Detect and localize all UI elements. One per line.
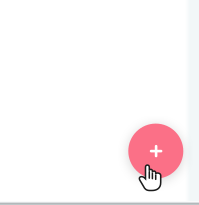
button[interactable]: Add: [128, 124, 183, 179]
